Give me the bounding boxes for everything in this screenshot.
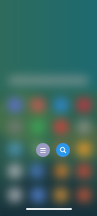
button[interactable]: Menu (36, 143, 50, 157)
button[interactable]: Search (56, 143, 70, 157)
